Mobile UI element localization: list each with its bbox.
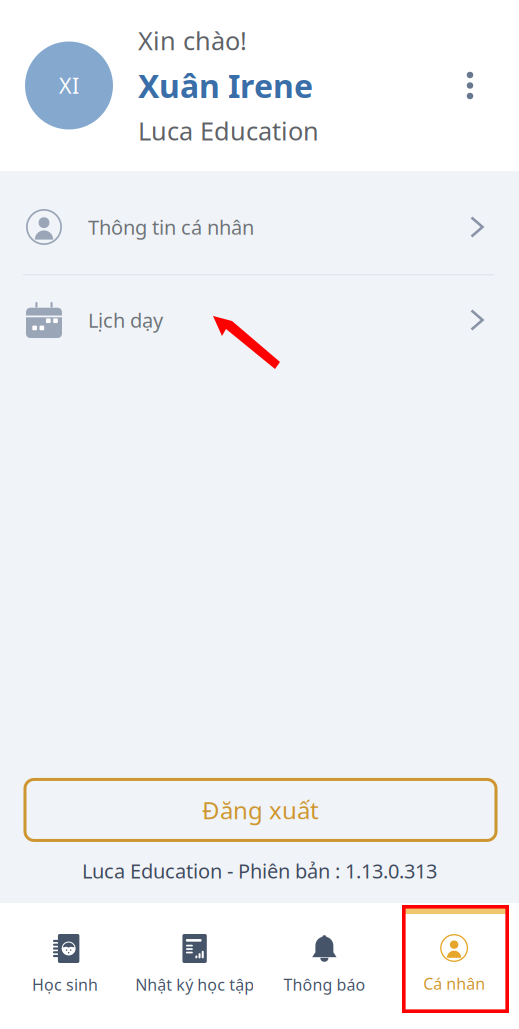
staticText: Xuân Irene	[138, 64, 313, 107]
staticText: Thông tin cá nhân	[88, 214, 254, 240]
button[interactable]: Nhật ký học tập	[130, 903, 260, 1029]
staticText: Luca Education	[138, 114, 319, 147]
staticText: Luca Education - Phiên bản : 1.13.0.313	[82, 857, 437, 884]
button[interactable]: Cá nhân	[389, 903, 519, 1029]
button[interactable]: Lịch dạy	[0, 275, 519, 364]
staticText: Thông báo	[283, 974, 365, 995]
button[interactable]: Đăng xuất	[25, 779, 496, 840]
staticText: Học sinh	[32, 974, 98, 995]
button[interactable]: More options	[455, 67, 485, 103]
staticText: Cá nhân	[423, 973, 485, 994]
staticText: Đăng xuất	[202, 794, 319, 826]
staticText: XI	[59, 71, 79, 100]
button[interactable]: Thông tin cá nhân	[0, 180, 519, 274]
staticText: Xin chào!	[138, 24, 247, 57]
button[interactable]: Thông báo	[259, 903, 389, 1029]
staticText: Lịch dạy	[88, 307, 163, 333]
button[interactable]: Học sinh	[0, 903, 130, 1029]
staticText: Nhật ký học tập	[135, 974, 254, 995]
